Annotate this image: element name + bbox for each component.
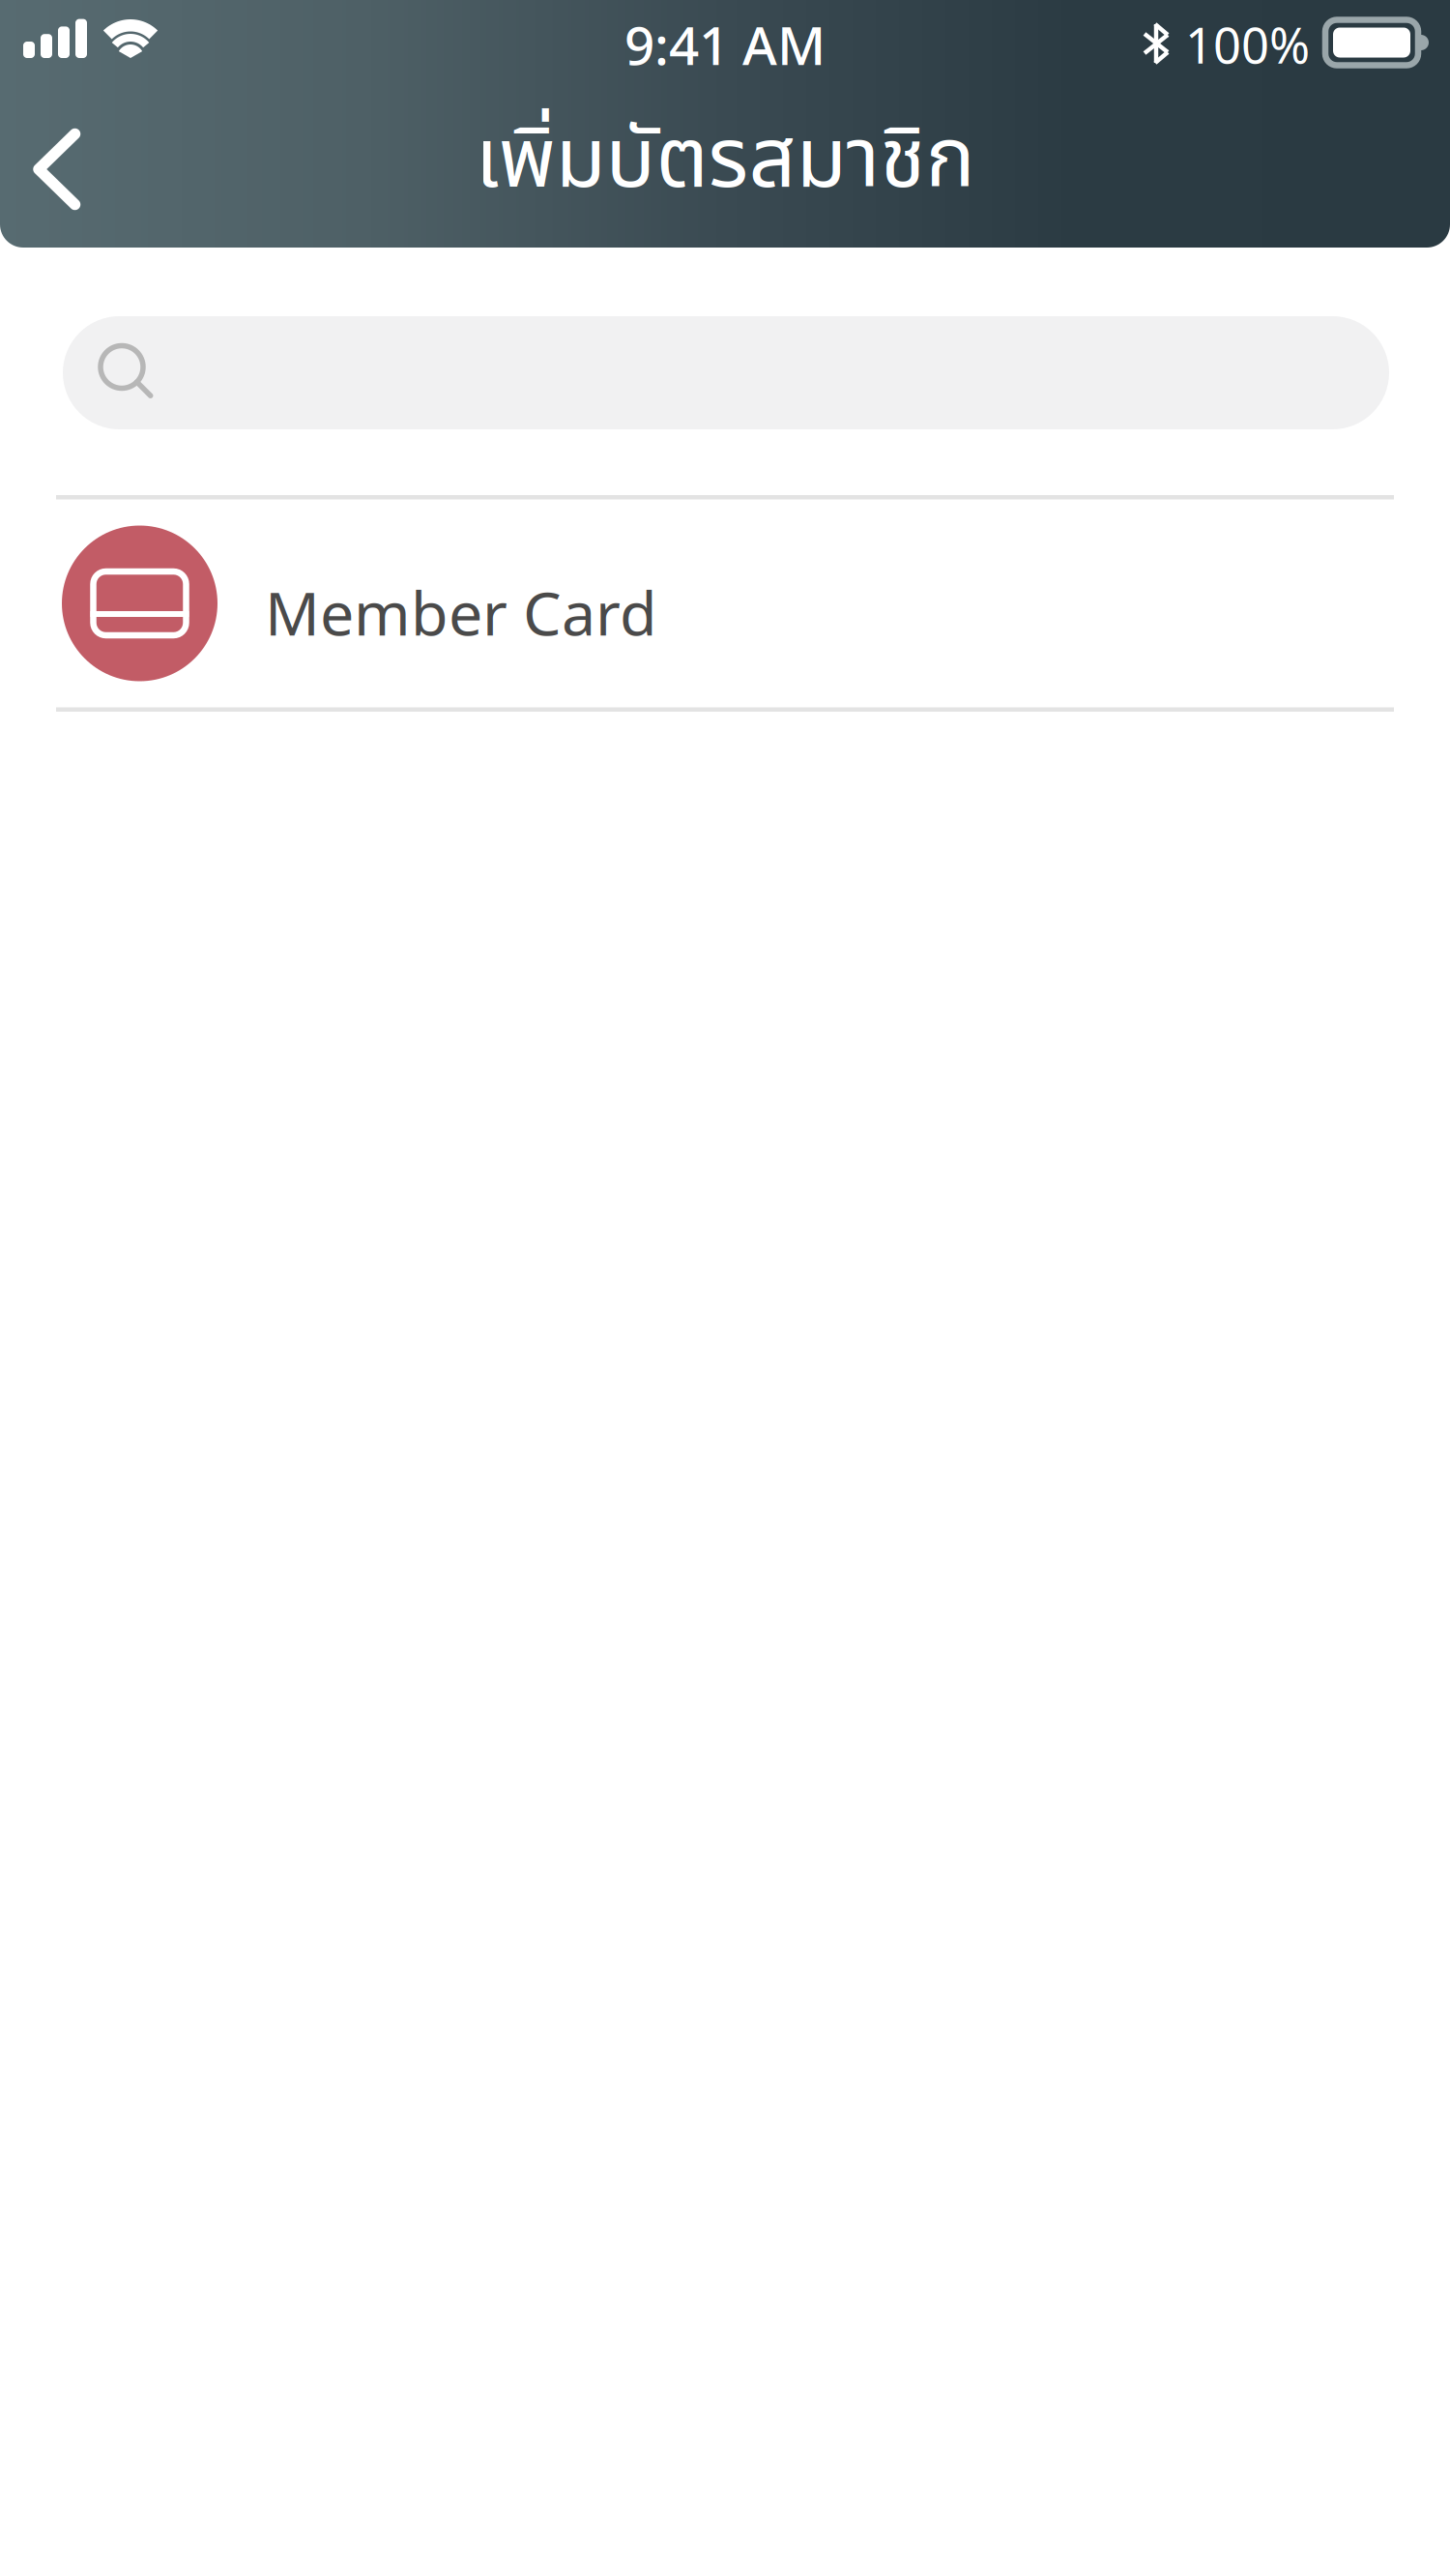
staticText: 9:41 AM <box>624 9 826 80</box>
button[interactable]: Member Card <box>56 499 1394 707</box>
staticText: เพิ่มบัตรสมาชิก <box>475 99 975 224</box>
button[interactable]: Search <box>63 316 1389 429</box>
staticText: 100% <box>1185 12 1310 77</box>
button[interactable]: Back <box>0 83 101 226</box>
staticText: Member Card <box>265 572 657 652</box>
